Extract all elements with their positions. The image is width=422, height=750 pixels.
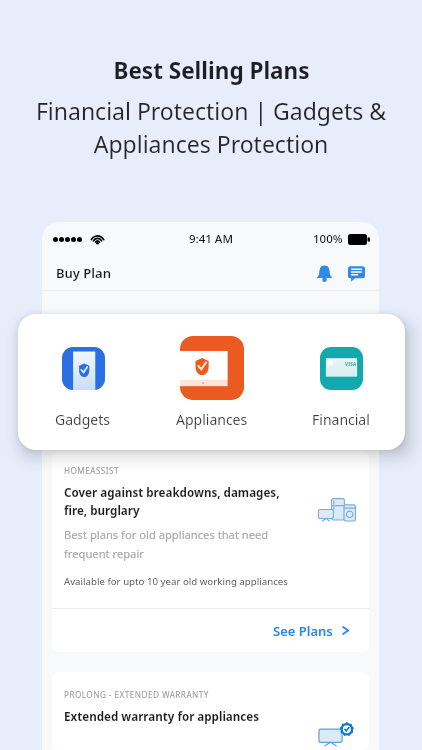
staticText: VISA bbox=[345, 361, 357, 367]
staticText: Financial Protection | Gadgets & Applian… bbox=[0, 95, 422, 160]
button[interactable]: Gadgets bbox=[18, 314, 147, 450]
button[interactable]: Appliances bbox=[147, 314, 276, 450]
staticText: 9:41 AM bbox=[189, 231, 233, 247]
staticText: Extended warranty for appliances bbox=[64, 709, 260, 725]
staticText: Gadgets bbox=[55, 410, 110, 429]
staticText: 100% bbox=[313, 231, 343, 247]
staticText: Available for upto 10 year old working a… bbox=[64, 575, 288, 588]
staticText: Appliances bbox=[176, 410, 248, 429]
button[interactable]: PROLONG - EXTENDED WARRANTY bbox=[52, 672, 369, 750]
staticText: Cover against breakdowns, damages, fire,… bbox=[64, 485, 280, 519]
button[interactable]: VISA bbox=[276, 314, 405, 450]
staticText: Financial bbox=[312, 410, 370, 429]
staticText: PROLONG - EXTENDED WARRANTY bbox=[64, 689, 209, 700]
button[interactable]: Notifications bbox=[309, 258, 339, 288]
button[interactable]: HOMEASSIST bbox=[52, 451, 369, 652]
staticText: HOMEASSIST bbox=[64, 465, 119, 476]
staticText: See Plans bbox=[273, 622, 333, 640]
staticText: Buy Plan bbox=[56, 264, 111, 282]
button[interactable]: See Plans bbox=[52, 609, 369, 652]
staticText: Best plans for old appliances that need … bbox=[64, 527, 269, 561]
button[interactable]: Messages bbox=[341, 258, 371, 288]
staticText: Best Selling Plans bbox=[113, 55, 310, 86]
